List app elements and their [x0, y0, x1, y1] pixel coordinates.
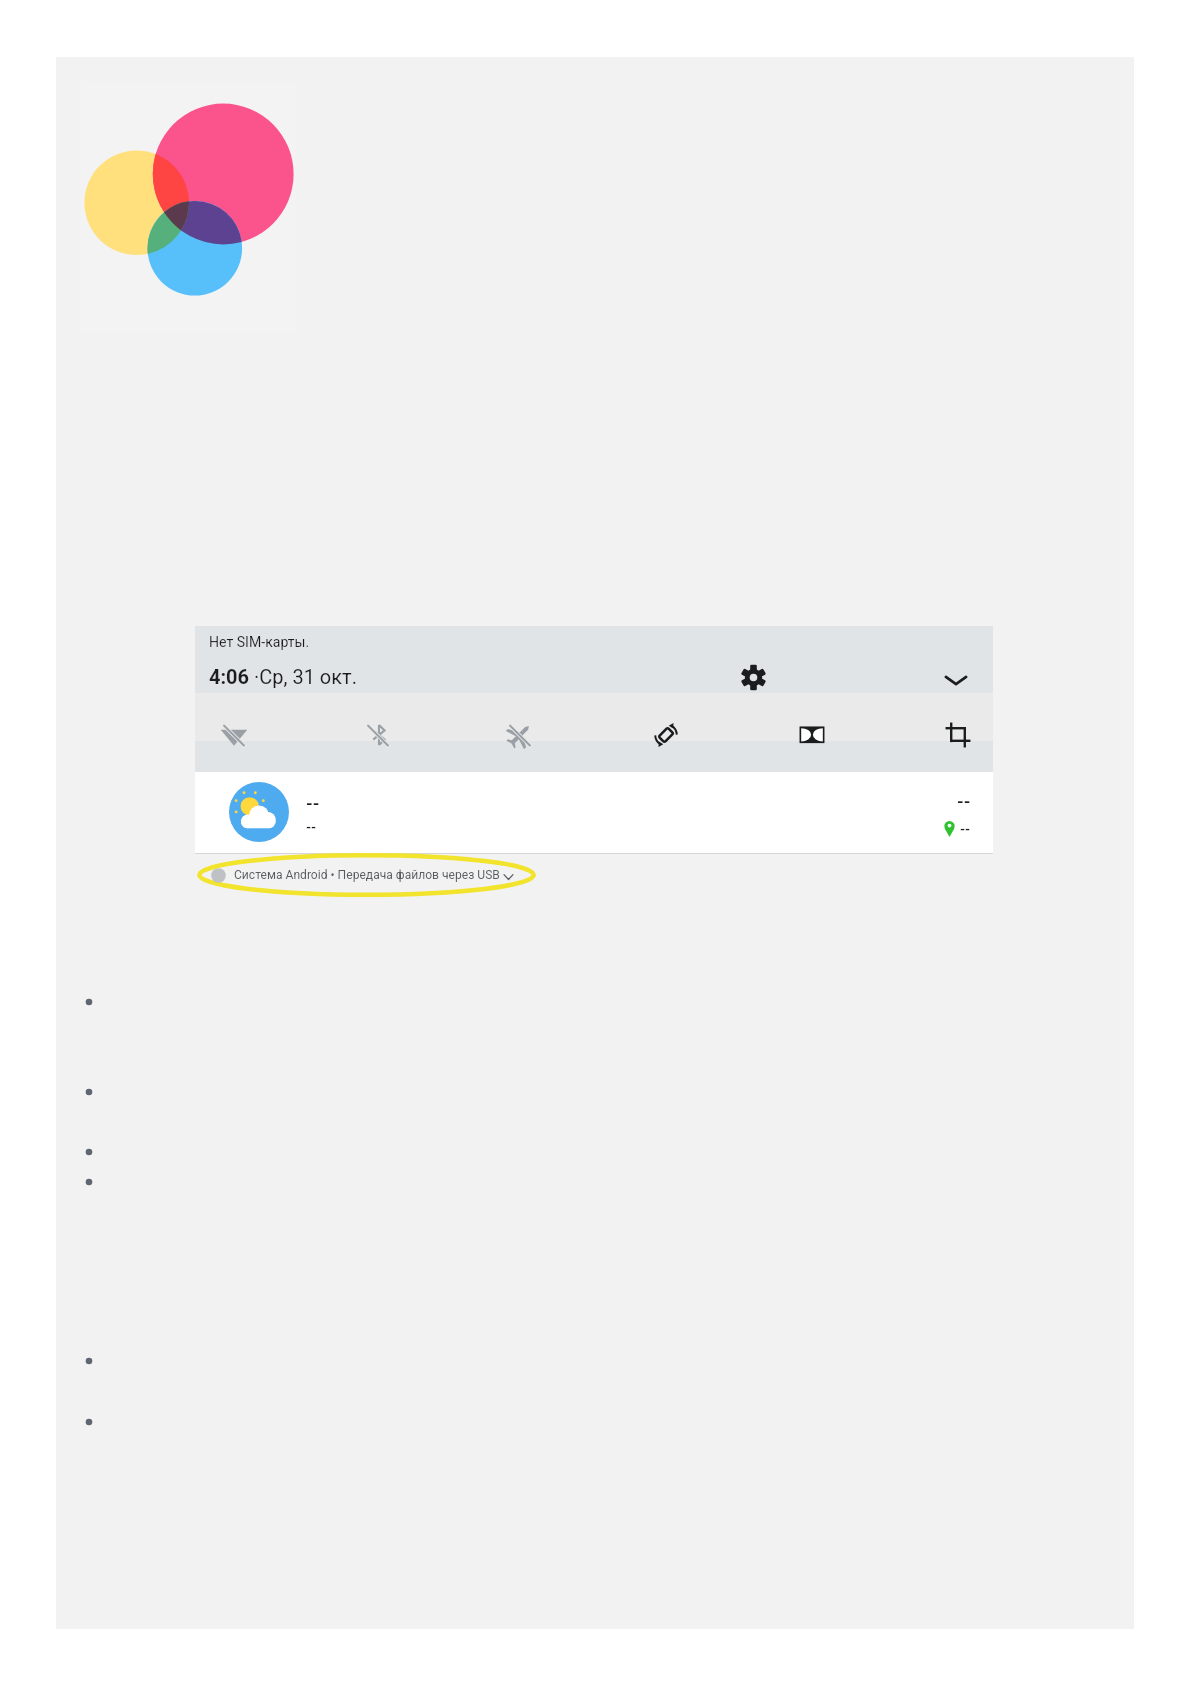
button[interactable]: Bluetooth off	[364, 721, 392, 749]
button[interactable]: Settings	[740, 664, 767, 691]
staticText: --	[960, 822, 971, 837]
button[interactable]: Reading mode	[798, 721, 826, 749]
staticText: --	[957, 791, 971, 811]
staticText: --	[306, 793, 320, 813]
button[interactable]: Система Android • Передача файлов через …	[198, 862, 518, 890]
staticText: Нет SIM-карты.	[209, 634, 310, 651]
button[interactable]: Airplane mode off	[506, 721, 534, 749]
staticText: --	[306, 820, 317, 835]
button[interactable]: Wi-Fi off	[220, 721, 248, 749]
button[interactable]: --	[195, 769, 993, 851]
button[interactable]: Expand quick settings	[943, 666, 969, 692]
button[interactable]: Screenshot	[944, 721, 972, 749]
staticText: Система Android • Передача файлов через …	[234, 868, 500, 882]
button[interactable]: Auto rotate	[652, 721, 680, 749]
staticText: 4:06 ·Ср, 31 окт.	[209, 665, 357, 688]
